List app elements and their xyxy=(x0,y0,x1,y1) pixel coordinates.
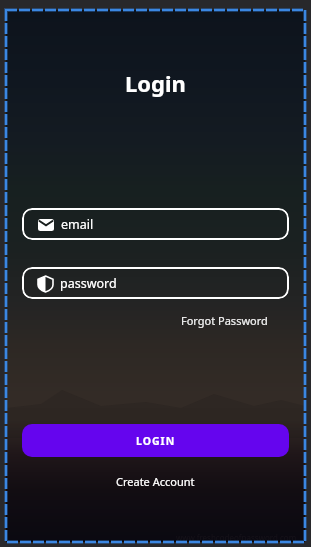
button[interactable]: password xyxy=(22,267,289,299)
staticText: Create Account xyxy=(116,474,195,489)
staticText: email xyxy=(61,216,94,233)
button[interactable]: email xyxy=(22,208,289,240)
staticText: password xyxy=(60,275,117,292)
staticText: Forgot Password xyxy=(181,313,268,328)
button[interactable]: LOGIN xyxy=(22,424,289,457)
button[interactable]: Create Account xyxy=(116,474,195,489)
staticText: www.freshcodeofpassword.com xyxy=(176,532,297,543)
button[interactable]: Forgot Password xyxy=(181,313,268,328)
staticText: LOGIN xyxy=(136,434,176,448)
staticText: Login xyxy=(125,68,186,98)
